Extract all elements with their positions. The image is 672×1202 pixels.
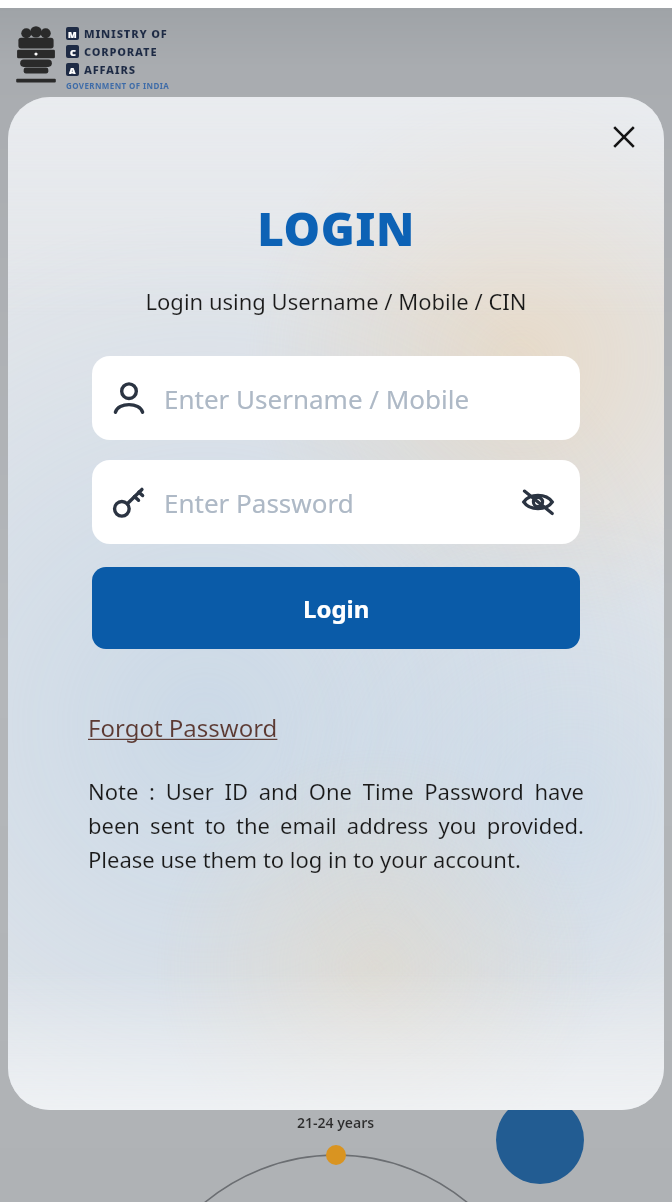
- button[interactable]: Password field: [92, 460, 580, 544]
- staticText: Forgot Password: [88, 711, 278, 744]
- staticText: M: [68, 28, 77, 40]
- staticText: 21-24 years: [297, 1113, 375, 1132]
- button[interactable]: Show password: [516, 480, 560, 524]
- staticText: GOVERNMENT OF INDIA: [66, 80, 170, 91]
- staticText: CORPORATE: [84, 44, 158, 59]
- staticText: Enter Password: [164, 485, 508, 520]
- staticText: LOGIN: [8, 197, 664, 260]
- staticText: MINISTRY OF: [84, 26, 168, 41]
- button[interactable]: Close: [598, 111, 650, 163]
- staticText: Note : User ID and One Time Password hav…: [88, 776, 584, 874]
- staticText: AFFAIRS: [84, 62, 136, 77]
- staticText: C: [70, 46, 76, 58]
- staticText: A: [69, 64, 76, 76]
- button[interactable]: Forgot Password: [88, 711, 278, 744]
- staticText: Login using Username / Mobile / CIN: [8, 286, 664, 316]
- staticText: Enter Username / Mobile: [164, 381, 560, 416]
- button[interactable]: Username field: [92, 356, 580, 440]
- button[interactable]: Login: [92, 567, 580, 649]
- staticText: Login: [303, 592, 370, 625]
